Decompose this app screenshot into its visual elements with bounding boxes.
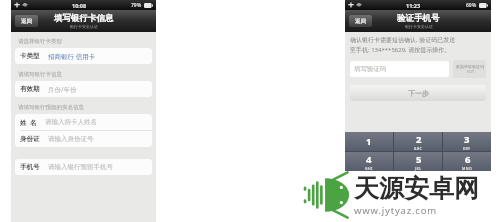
- staticText: GHI: [365, 166, 373, 171]
- staticText: 返回: [21, 18, 32, 25]
- staticText: 79%: [131, 2, 142, 9]
- staticText: 填写验证码: [354, 65, 387, 73]
- staticText: 填写银行卡信息: [54, 13, 114, 24]
- staticText: 银行卡安全认证: [70, 24, 98, 29]
- staticText: 姓 名: [20, 118, 37, 127]
- staticText: 请填写银行预留的实名信息: [18, 104, 84, 111]
- staticText: 身份证: [20, 135, 40, 143]
- staticText: 重新获取验证码: [456, 64, 484, 69]
- button[interactable]: 有效期: [15, 81, 152, 97]
- staticText: 验证手机号: [397, 13, 440, 24]
- staticText: DEF: [463, 146, 471, 151]
- button[interactable]: 姓 名: [15, 114, 152, 130]
- button[interactable]: 手机号: [15, 159, 152, 175]
- staticText: MNO: [462, 166, 473, 171]
- staticText: 请输入持卡人姓名: [45, 118, 97, 126]
- staticText: 1: [366, 135, 372, 148]
- button[interactable]: 3: [443, 132, 491, 151]
- staticText: 6: [465, 153, 471, 166]
- staticText: 下一步: [408, 89, 429, 98]
- button[interactable]: 下一步: [350, 85, 486, 101]
- button[interactable]: 返回: [349, 15, 372, 27]
- button[interactable]: 6: [443, 152, 491, 171]
- staticText: 有效期: [20, 85, 40, 93]
- staticText: 银行卡安全认证: [405, 24, 433, 29]
- staticText: 至手机: 134***5629, 请按提示操作。: [350, 46, 451, 54]
- button[interactable]: 填写验证码: [350, 61, 449, 77]
- other: Logo: [303, 174, 351, 216]
- staticText: 请输入身份证号: [48, 135, 94, 143]
- staticText: 请填写银行卡信息: [18, 71, 62, 78]
- staticText: 5: [416, 153, 422, 166]
- staticText: JKL: [415, 166, 422, 171]
- button[interactable]: 重新获取验证码: [453, 60, 486, 78]
- staticText: 返回: [355, 18, 366, 25]
- button[interactable]: 卡类型: [15, 48, 152, 64]
- staticText: (57): [467, 69, 474, 74]
- button[interactable]: 4: [345, 152, 393, 171]
- staticText: 确认银行卡需要短信确认, 验证码已发送: [350, 36, 456, 44]
- staticText: 请输入银行预留手机号: [48, 163, 113, 171]
- staticText: 天源安卓网: [354, 173, 479, 204]
- staticText: 11:23: [406, 2, 421, 9]
- button[interactable]: 5: [394, 152, 442, 171]
- button[interactable]: 1: [345, 132, 393, 151]
- button[interactable]: 返回: [15, 15, 38, 27]
- staticText: 请选择银行卡类型: [18, 38, 62, 45]
- button[interactable]: 身份证: [15, 131, 152, 147]
- staticText: www.jytyaz.com: [354, 204, 437, 217]
- staticText: 4: [366, 153, 372, 166]
- staticText: 60%: [466, 2, 477, 9]
- staticText: 10:08: [72, 2, 87, 9]
- staticText: 2: [416, 133, 422, 146]
- staticText: 3: [464, 133, 470, 146]
- staticText: 卡类型: [20, 52, 40, 60]
- staticText: 手机号: [20, 163, 40, 171]
- staticText: 月份/年份: [48, 85, 77, 94]
- staticText: 招商银行 信用卡: [48, 52, 96, 61]
- staticText: ABC: [414, 146, 423, 151]
- button[interactable]: 2: [394, 132, 442, 151]
